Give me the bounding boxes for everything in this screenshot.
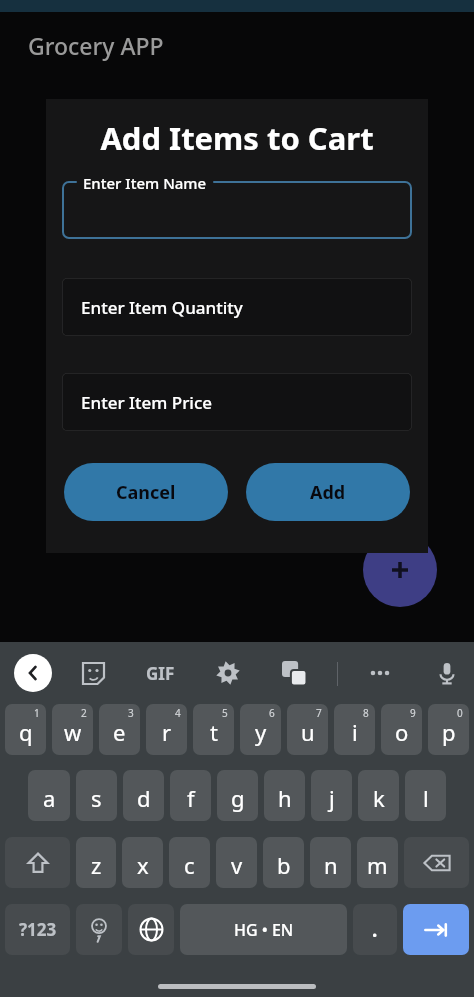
staticText: .: [372, 917, 378, 943]
button[interactable]: [62, 181, 412, 239]
button[interactable]: z: [76, 837, 116, 888]
button[interactable]: f: [170, 770, 211, 821]
staticText: i: [352, 717, 358, 747]
button[interactable]: Back: [14, 654, 52, 692]
staticText: y: [255, 717, 267, 747]
button[interactable]: Add item: [363, 533, 437, 607]
staticText: v: [231, 850, 243, 880]
staticText: s: [91, 783, 102, 813]
button[interactable]: Backspace: [404, 837, 469, 888]
staticText: Cancel: [116, 480, 176, 505]
staticText: r: [162, 717, 172, 747]
staticText: 8: [363, 706, 369, 720]
button[interactable]: s: [76, 770, 117, 821]
button[interactable]: HG • EN: [180, 904, 347, 955]
button[interactable]: j: [311, 770, 352, 821]
staticText: Enter Item Price: [81, 391, 213, 414]
staticText: t: [210, 717, 218, 747]
button[interactable]: Shift: [5, 837, 70, 888]
staticText: 3: [128, 706, 134, 720]
staticText: 2: [81, 706, 87, 720]
button[interactable]: w: [52, 704, 93, 755]
button[interactable]: c: [169, 837, 210, 888]
button[interactable]: x: [122, 837, 163, 888]
staticText: u: [301, 717, 315, 747]
staticText: 6: [269, 706, 275, 720]
staticText: l: [423, 783, 429, 813]
staticText: GIF: [146, 662, 175, 685]
button[interactable]: h: [264, 770, 305, 821]
staticText: q: [19, 717, 33, 747]
button[interactable]: d: [123, 770, 164, 821]
button[interactable]: q: [5, 704, 46, 755]
staticText: z: [91, 850, 102, 880]
button[interactable]: l: [405, 770, 446, 821]
staticText: g: [231, 783, 245, 813]
button[interactable]: Enter Item Quantity: [62, 278, 412, 336]
staticText: 5: [222, 706, 228, 720]
button[interactable]: [403, 904, 469, 955]
staticText: d: [137, 783, 151, 813]
staticText: ?123: [19, 918, 57, 941]
button[interactable]: i: [334, 704, 375, 755]
staticText: Enter Item Name: [83, 173, 207, 193]
button[interactable]: Enter Item Price: [62, 373, 412, 431]
button[interactable]: r: [146, 704, 187, 755]
staticText: b: [277, 850, 291, 880]
staticText: n: [324, 850, 338, 880]
button[interactable]: o: [381, 704, 422, 755]
button[interactable]: .: [353, 904, 397, 955]
staticText: j: [329, 783, 335, 813]
button[interactable]: Stickers: [74, 654, 112, 692]
button[interactable]: Voice input: [428, 654, 466, 692]
button[interactable]: [128, 904, 174, 955]
button[interactable]: m: [357, 837, 398, 888]
staticText: e: [113, 717, 126, 747]
button[interactable]: v: [216, 837, 257, 888]
staticText: Add Items to Cart: [46, 117, 428, 159]
button[interactable]: a: [28, 770, 70, 821]
staticText: w: [64, 717, 82, 747]
button[interactable]: More options: [361, 654, 399, 692]
staticText: f: [187, 783, 195, 813]
staticText: HG • EN: [234, 919, 294, 941]
button[interactable]: b: [263, 837, 304, 888]
staticText: Add: [310, 480, 346, 505]
button[interactable]: Add: [246, 463, 410, 521]
button[interactable]: y: [240, 704, 281, 755]
button[interactable]: Cancel: [64, 463, 228, 521]
button[interactable]: n: [310, 837, 351, 888]
staticText: a: [43, 783, 56, 813]
staticText: o: [395, 717, 409, 747]
button[interactable]: GIF: [141, 654, 179, 692]
button[interactable]: u: [287, 704, 328, 755]
staticText: 4: [175, 706, 181, 720]
button[interactable]: t: [193, 704, 234, 755]
staticText: m: [367, 850, 388, 880]
staticText: Grocery APP: [28, 30, 164, 61]
button[interactable]: k: [358, 770, 399, 821]
button[interactable]: Translate: [275, 654, 313, 692]
staticText: 0: [457, 706, 463, 720]
staticText: x: [137, 850, 149, 880]
staticText: c: [184, 850, 195, 880]
staticText: h: [278, 783, 292, 813]
staticText: 1: [34, 706, 40, 720]
button[interactable]: p: [428, 704, 469, 755]
button[interactable]: g: [217, 770, 258, 821]
staticText: 9: [410, 706, 416, 720]
staticText: Enter Item Quantity: [81, 296, 243, 319]
staticText: p: [442, 717, 456, 747]
button[interactable]: ?123: [5, 904, 70, 955]
staticText: 7: [316, 706, 322, 720]
button[interactable]: e: [99, 704, 140, 755]
staticText: k: [373, 783, 385, 813]
button[interactable]: [76, 904, 122, 955]
button[interactable]: Settings: [209, 654, 247, 692]
